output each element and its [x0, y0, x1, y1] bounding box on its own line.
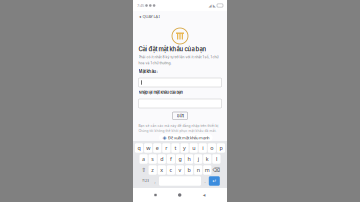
button[interactable]: o	[208, 143, 216, 153]
staticText: Bạn sẽ cần các mã này để đăng nhập trên …	[138, 124, 218, 128]
staticText: x	[160, 166, 163, 174]
button[interactable]: ◈	[159, 134, 213, 141]
button[interactable]: ⇧	[139, 165, 148, 175]
staticText: d	[160, 155, 163, 163]
button[interactable]: Recents	[154, 194, 157, 196]
staticText: z	[151, 166, 154, 174]
staticText: ◂	[139, 14, 141, 19]
staticText: GỬI	[176, 113, 183, 118]
button[interactable]: Back	[203, 192, 206, 198]
staticText: Chúng tôi không thể khôi phục mật khẩu đ…	[138, 129, 216, 133]
button[interactable]: c	[167, 165, 175, 175]
button[interactable]: g	[176, 154, 184, 164]
staticText: Mật khẩu:	[138, 69, 157, 74]
staticText: h	[188, 155, 191, 163]
staticText: m	[205, 166, 210, 174]
button[interactable]: e	[153, 143, 161, 153]
staticText: g	[178, 155, 181, 163]
staticText: n	[197, 166, 200, 174]
staticText: Đề xuất mật khẩu mạnh	[168, 135, 209, 140]
staticText: p	[219, 144, 222, 152]
staticText: j	[198, 155, 199, 163]
button[interactable]: l	[212, 154, 220, 164]
button[interactable]: w	[144, 143, 152, 153]
staticText: 7:45	[137, 3, 144, 8]
staticText: r	[165, 144, 167, 152]
staticText: b	[188, 166, 191, 174]
button[interactable]: r	[162, 143, 170, 153]
button[interactable]: i	[199, 143, 207, 153]
button[interactable]: p	[217, 143, 225, 153]
button[interactable]: f	[167, 154, 175, 164]
staticText: t	[174, 144, 176, 152]
button[interactable]: y	[180, 143, 189, 153]
button[interactable]	[159, 176, 201, 186]
staticText: l	[216, 155, 217, 163]
staticText: Cài đặt mật khẩu của bạn	[138, 45, 206, 53]
button[interactable]: u	[189, 143, 198, 153]
button[interactable]: ◂	[133, 13, 227, 20]
button[interactable]: ?123	[140, 176, 151, 186]
staticText: o	[210, 144, 213, 152]
button[interactable]: GỬI	[172, 112, 187, 119]
staticText: i	[202, 144, 203, 152]
button[interactable]: a	[139, 154, 148, 164]
button[interactable]: Home	[178, 193, 181, 197]
button[interactable]: .	[202, 176, 208, 186]
button[interactable]: q	[135, 143, 143, 153]
button[interactable]: k	[203, 154, 211, 164]
button[interactable]: m	[203, 165, 211, 175]
staticText: ◂	[203, 192, 206, 198]
staticText: c	[169, 166, 172, 174]
staticText: ,	[155, 178, 156, 184]
staticText: Nhập lại mật khẩu của bạn	[138, 90, 182, 95]
staticText: v	[178, 166, 181, 174]
staticText: ◢	[209, 3, 212, 8]
staticText: ?123	[142, 179, 149, 183]
staticText: u	[192, 144, 195, 152]
button[interactable]: v	[176, 165, 184, 175]
button[interactable]: x	[158, 165, 166, 175]
staticText: f	[170, 155, 172, 163]
staticText: s	[151, 155, 154, 163]
button[interactable]: z	[149, 165, 157, 175]
staticText: hoa và 1 chữ thường.	[138, 61, 171, 65]
button[interactable]: b	[185, 165, 193, 175]
button[interactable]: n	[194, 165, 202, 175]
button[interactable]: ⌫	[212, 165, 220, 175]
staticText: w	[146, 144, 150, 152]
staticText: ⌫	[212, 167, 220, 173]
button[interactable]: ,	[152, 176, 158, 186]
staticText: ⇧	[142, 167, 146, 173]
button[interactable]: s	[149, 154, 157, 164]
staticText: ◣	[213, 3, 216, 8]
staticText: .	[204, 178, 205, 184]
button[interactable]: t	[171, 143, 179, 153]
staticText: k	[206, 155, 209, 163]
staticText: ↵	[212, 178, 216, 184]
staticText: ◈	[162, 135, 166, 141]
staticText: y	[183, 144, 186, 152]
staticText: a	[142, 155, 145, 163]
staticText: e	[156, 144, 159, 152]
staticText: q	[137, 144, 140, 152]
button[interactable]: j	[194, 154, 202, 164]
button[interactable]: h	[185, 154, 193, 164]
staticText: QUAY LẠI	[142, 14, 159, 19]
button[interactable]: d	[158, 154, 166, 164]
staticText: Phải có ít nhất 8 ký tự trở lên với ít n…	[138, 55, 218, 59]
button[interactable]: Enter	[209, 176, 220, 186]
